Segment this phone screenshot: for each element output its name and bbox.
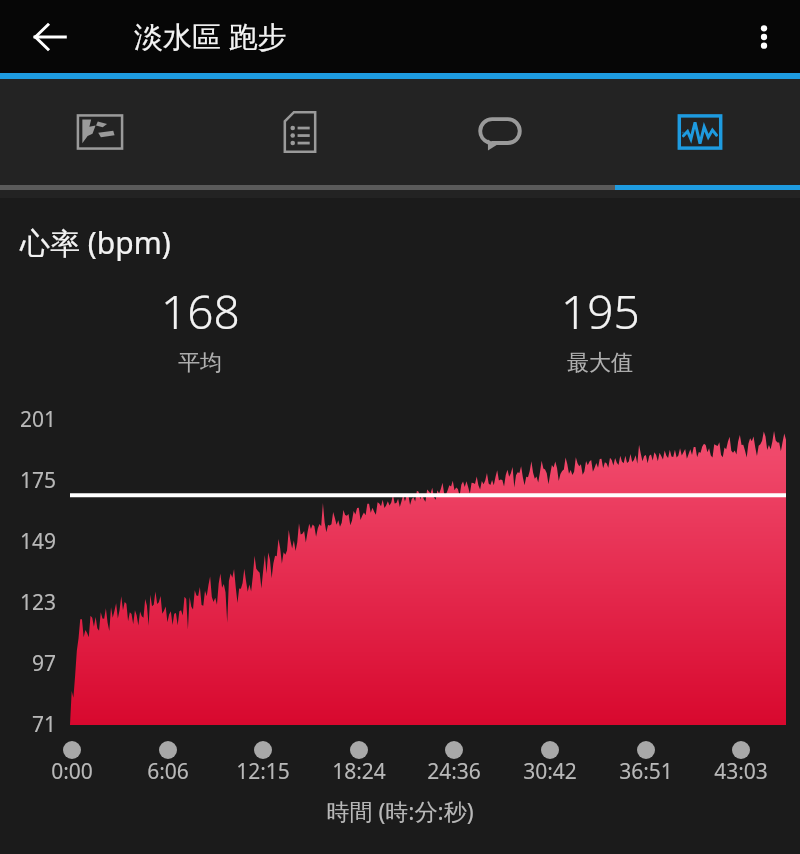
staticText: 心率 (bpm) <box>20 222 171 263</box>
staticText: 6:06 <box>120 757 216 786</box>
staticText: 201 <box>0 405 56 434</box>
staticText: 18:24 <box>311 757 407 786</box>
staticText: 123 <box>0 588 56 617</box>
button[interactable]: More options <box>736 9 792 65</box>
staticText: 30:42 <box>502 757 598 786</box>
staticText: 24:36 <box>406 757 502 786</box>
staticText: 43:03 <box>693 757 789 786</box>
button[interactable]: Map <box>0 79 200 185</box>
staticText: 0:00 <box>24 757 120 786</box>
staticText: 168 <box>161 280 240 343</box>
staticText: 最大值 <box>567 349 633 377</box>
staticText: 195 <box>561 280 640 343</box>
staticText: 平均 <box>178 349 222 377</box>
staticText: 12:15 <box>215 757 311 786</box>
staticText: 淡水區 跑步 <box>134 16 287 56</box>
button[interactable]: Details <box>200 79 400 185</box>
staticText: 71 <box>0 710 56 739</box>
staticText: 36:51 <box>598 757 694 786</box>
staticText: 97 <box>0 649 56 678</box>
button[interactable]: Back <box>18 5 82 69</box>
button[interactable]: Heart rate <box>600 79 800 185</box>
button[interactable]: Laps <box>400 79 600 185</box>
staticText: 149 <box>0 527 56 556</box>
staticText: 175 <box>0 466 56 495</box>
staticText: 時間 (時:分:秒) <box>0 795 800 826</box>
